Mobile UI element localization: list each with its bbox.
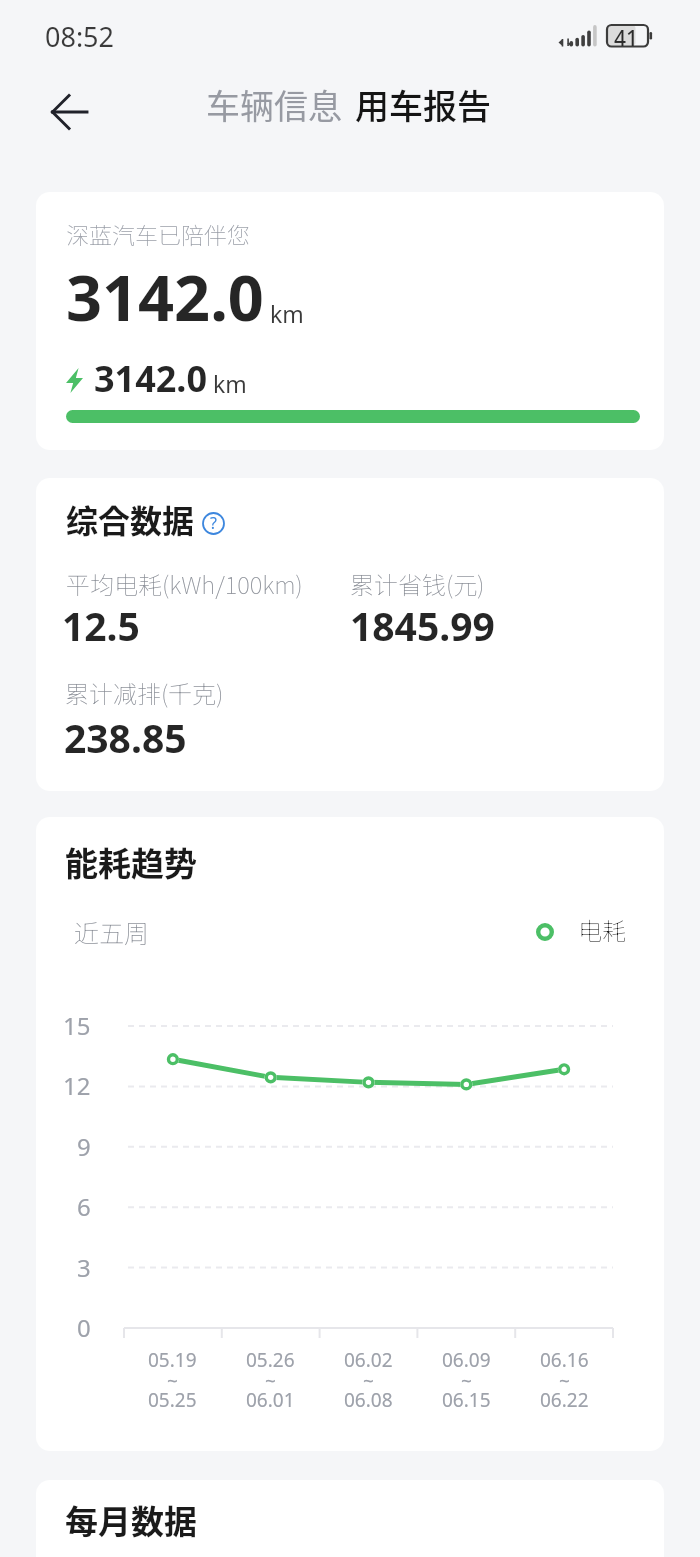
staticText: 05.19 [148,1347,197,1373]
staticText: ~ [265,1368,276,1394]
staticText: ? [210,512,217,534]
staticText: 06.02 [344,1347,393,1373]
button[interactable]: 车辆信息 [206,80,342,129]
staticText: 近五周 [74,914,150,950]
staticText: 累计省钱(元) [350,566,485,601]
staticText: 6 [77,1190,91,1223]
staticText: 06.15 [442,1387,491,1413]
staticText: 0 [77,1311,91,1344]
staticText: 用车报告 [355,80,491,129]
staticText: 累计减排(千克) [65,675,224,710]
staticText: 车辆信息 [206,80,342,129]
staticText: 05.25 [148,1387,197,1413]
staticText: 06.09 [442,1347,491,1373]
staticText: 41 [614,24,639,53]
staticText: 平均电耗(kWh/100km) [66,566,303,601]
staticText: 综合数据 [66,496,195,542]
staticText: 12 [63,1069,91,1102]
button[interactable]: 综合数据说明 [200,510,227,537]
staticText: 深蓝汽车已陪伴您 [66,217,250,250]
staticText: 12.5 [62,599,140,652]
staticText: km [270,298,304,329]
staticText: 电耗 [578,912,626,947]
staticText: 3142.0 [66,254,264,340]
staticText: 能耗趋势 [65,838,197,886]
staticText: ~ [167,1368,178,1394]
staticText: ~ [461,1368,472,1394]
staticText: ~ [559,1368,570,1394]
staticText: 05.26 [246,1347,295,1373]
staticText: 3 [77,1251,91,1284]
staticText: 06.08 [344,1387,393,1413]
staticText: 238.85 [64,711,187,764]
staticText: 1845.99 [350,599,495,652]
staticText: 9 [77,1130,91,1163]
staticText: 15 [63,1009,91,1042]
staticText: 3142.0 [94,354,208,403]
staticText: 06.22 [540,1387,589,1413]
staticText: 06.01 [246,1387,295,1413]
button[interactable]: 用车报告 [355,80,491,129]
staticText: km [213,368,247,399]
button[interactable]: 返回 [33,76,105,148]
staticText: 每月数据 [65,1496,197,1544]
staticText: ~ [363,1368,374,1394]
staticText: 06.16 [540,1347,589,1373]
staticText: 08:52 [45,18,115,55]
